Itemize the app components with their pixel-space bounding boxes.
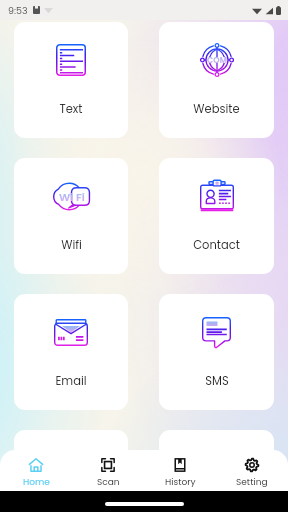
staticText: COM (207, 55, 228, 66)
button[interactable] (159, 430, 274, 512)
button[interactable]: COM (159, 22, 274, 138)
staticText: Email (55, 373, 87, 389)
staticText: Fi (76, 189, 85, 204)
staticText: Scan (97, 476, 120, 489)
other: History (173, 458, 187, 472)
staticText: Setting (236, 476, 268, 489)
staticText: Home (23, 476, 50, 489)
staticText: SMS (205, 373, 229, 389)
staticText: Text (59, 101, 83, 117)
button[interactable] (14, 430, 128, 512)
staticText: History (165, 476, 196, 489)
button[interactable]: Contact (159, 158, 274, 274)
button[interactable]: SMS (159, 294, 274, 410)
other: Home (29, 458, 43, 472)
other: Scan (101, 458, 115, 472)
other: Setting (245, 458, 259, 472)
button[interactable]: Scan (72, 450, 144, 491)
button[interactable]: Wi (14, 158, 128, 274)
staticText: 9:53 (8, 4, 28, 17)
staticText: Website (193, 101, 240, 117)
staticText: Wi (59, 189, 74, 204)
button[interactable]: Text (14, 22, 128, 138)
button[interactable]: Setting (216, 450, 288, 491)
staticText: Wifi (61, 237, 82, 253)
staticText: Contact (193, 237, 240, 253)
button[interactable]: Email (14, 294, 128, 410)
button[interactable]: History (144, 450, 216, 491)
button[interactable]: Home (0, 450, 72, 491)
